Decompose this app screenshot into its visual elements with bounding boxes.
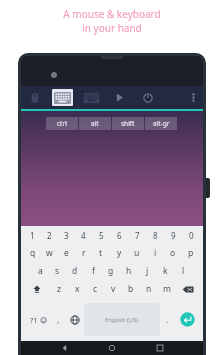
button[interactable]: w — [41, 244, 58, 262]
button[interactable]: 8 — [146, 226, 164, 244]
button[interactable]: Power — [133, 86, 163, 109]
button[interactable]: Recents — [156, 344, 164, 352]
button[interactable]: alt-gr — [145, 117, 177, 130]
button[interactable]: Mouse mode — [21, 86, 48, 109]
staticText: w — [46, 247, 53, 259]
staticText: 9 — [171, 230, 176, 241]
staticText: alt — [91, 119, 99, 128]
staticText: alt-gr — [153, 119, 170, 128]
button[interactable]: Enter — [175, 300, 200, 339]
staticText: m — [163, 283, 171, 295]
button[interactable]: Shift — [24, 280, 49, 298]
staticText: y — [117, 247, 122, 259]
button[interactable]: ctrl — [46, 117, 78, 130]
button[interactable]: d — [66, 262, 84, 280]
button[interactable]: c — [86, 280, 104, 298]
button[interactable]: e — [58, 244, 75, 262]
button[interactable]: Symbols and emoji — [24, 300, 51, 339]
staticText: o — [170, 247, 176, 259]
button[interactable]: m — [158, 280, 176, 298]
staticText: A mouse & keyboard — [63, 7, 161, 21]
button[interactable]: 5 — [92, 226, 110, 244]
staticText: 0 — [189, 230, 194, 241]
button[interactable]: 9 — [164, 226, 182, 244]
staticText: 3 — [64, 230, 69, 241]
button[interactable]: v — [104, 280, 122, 298]
staticText: d — [72, 265, 78, 277]
button[interactable]: y — [110, 244, 128, 262]
staticText: j — [146, 265, 149, 277]
button[interactable]: . — [160, 300, 175, 339]
button[interactable]: b — [122, 280, 140, 298]
staticText: . — [166, 314, 169, 325]
button[interactable]: j — [138, 262, 156, 280]
button[interactable]: 3 — [58, 226, 75, 244]
staticText: u — [134, 247, 140, 259]
button[interactable]: n — [140, 280, 158, 298]
staticText: 6 — [117, 230, 122, 241]
staticText: f — [92, 265, 95, 277]
staticText: i — [154, 247, 157, 259]
button[interactable]: r — [75, 244, 92, 262]
staticText: t — [99, 247, 103, 259]
staticText: 2 — [47, 230, 52, 241]
staticText: r — [82, 247, 86, 259]
button[interactable]: p — [182, 244, 200, 262]
button[interactable]: 2 — [41, 226, 58, 244]
staticText: l — [182, 265, 185, 277]
staticText: ctrl — [57, 119, 67, 128]
staticText: h — [126, 265, 132, 277]
button[interactable]: Backspace — [176, 280, 200, 298]
button[interactable]: h — [120, 262, 138, 280]
staticText: ?1 — [30, 315, 38, 325]
staticText: 4 — [81, 230, 86, 241]
button[interactable]: 1 — [24, 226, 41, 244]
staticText: s — [55, 265, 60, 277]
button[interactable]: , — [51, 300, 66, 339]
button[interactable]: Change language — [66, 300, 84, 339]
button[interactable]: t — [92, 244, 110, 262]
staticText: v — [111, 283, 116, 295]
staticText: a — [38, 265, 43, 277]
staticText: , — [57, 314, 60, 325]
staticText: in your hand — [82, 21, 142, 35]
staticText: 7 — [135, 230, 140, 241]
button[interactable]: Home — [108, 344, 116, 352]
button[interactable]: shift — [112, 117, 144, 130]
staticText: n — [146, 283, 152, 295]
button[interactable]: i — [146, 244, 164, 262]
button[interactable]: 0 — [182, 226, 200, 244]
button[interactable]: More options — [183, 86, 203, 109]
staticText: k — [163, 265, 168, 277]
button[interactable]: f — [84, 262, 102, 280]
button[interactable]: o — [164, 244, 182, 262]
button[interactable]: 4 — [75, 226, 92, 244]
button[interactable]: s — [49, 262, 66, 280]
button[interactable]: Keyboard settings — [77, 86, 105, 109]
staticText: shift — [121, 119, 135, 128]
staticText: c — [93, 283, 98, 295]
staticText: 1 — [30, 230, 35, 241]
button[interactable]: l — [174, 262, 192, 280]
button[interactable]: x — [68, 280, 86, 298]
button[interactable]: 6 — [110, 226, 128, 244]
staticText: p — [188, 247, 194, 259]
button[interactable]: Keyboard mode — [52, 89, 73, 106]
button[interactable]: English (US) — [84, 303, 160, 336]
staticText: q — [30, 247, 36, 259]
button[interactable]: z — [49, 280, 68, 298]
button[interactable]: g — [102, 262, 120, 280]
button[interactable]: Back — [61, 344, 69, 352]
button[interactable]: q — [24, 244, 41, 262]
button[interactable]: 7 — [128, 226, 146, 244]
staticText: x — [75, 283, 80, 295]
staticText: e — [64, 247, 69, 259]
button[interactable]: alt — [79, 117, 111, 130]
button[interactable]: u — [128, 244, 146, 262]
button[interactable]: k — [156, 262, 174, 280]
staticText: z — [57, 283, 61, 295]
staticText: b — [128, 283, 134, 295]
button[interactable]: Play — [105, 86, 133, 109]
staticText: English (US) — [105, 316, 139, 324]
button[interactable]: a — [32, 262, 49, 280]
